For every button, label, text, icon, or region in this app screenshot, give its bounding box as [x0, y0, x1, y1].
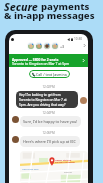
button[interactable]: Here’s where I’ll pick up at EIC	[20, 136, 80, 147]
staticText: 12:02PM	[9, 85, 88, 89]
staticText: Approved — $800 for 2 seats	[12, 57, 59, 61]
button[interactable]: Group details	[81, 42, 88, 49]
staticText: Call / text Jasmina	[36, 72, 67, 77]
button[interactable]: Union Station GO Bus Terminal	[20, 151, 88, 183]
staticText: +3	[60, 44, 65, 49]
staticText: Hey! I’m looking to get from Toronto to …	[19, 93, 72, 106]
button[interactable]: Call / text Jasmina	[29, 70, 70, 78]
staticText: Here’s where I’ll pick up at EIC	[23, 139, 77, 144]
staticText: Union Station GO Bus Terminal	[55, 158, 75, 164]
staticText: 10:30	[74, 37, 83, 41]
staticText: Secure	[4, 0, 38, 14]
staticText: Sure, I’d be happy to have you!	[23, 119, 78, 124]
staticText: payments	[41, 0, 90, 13]
button[interactable]: Sure, I’d be happy to have you!	[20, 116, 81, 127]
staticText: Front St	[64, 171, 73, 174]
staticText: & in-app messages	[4, 9, 95, 22]
button[interactable]: Hey! I’m looking to get from Toronto to …	[16, 91, 78, 108]
staticText: Toronto to Kingston on Mar 7 at 5pm	[12, 61, 70, 65]
staticText: 12:06PM	[9, 131, 88, 135]
button[interactable]: Approved — $800 for 2 seats	[9, 54, 88, 67]
staticText: 12:04PM	[9, 111, 88, 115]
staticText: Lake Shore Blvd	[22, 168, 39, 171]
